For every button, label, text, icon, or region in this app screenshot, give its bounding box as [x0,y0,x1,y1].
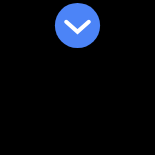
button[interactable]: Show less [55,3,100,48]
